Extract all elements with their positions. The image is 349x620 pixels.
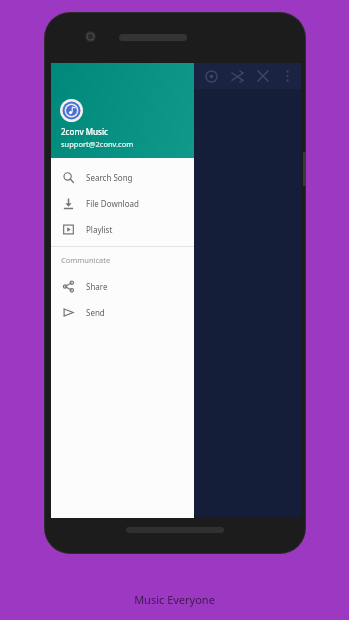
staticText: Share: [86, 281, 108, 292]
staticText: Playlist: [86, 224, 113, 235]
button[interactable]: Search Song: [51, 164, 194, 190]
staticText: File Download: [86, 198, 139, 209]
staticText: Music Everyone: [134, 592, 215, 607]
staticText: Communicate: [61, 255, 111, 265]
staticText: support@2conv.com: [61, 139, 134, 149]
button[interactable]: Playlist: [51, 216, 194, 242]
staticText: Search Song: [86, 172, 133, 183]
staticText: Send: [86, 307, 105, 318]
button[interactable]: Close: [250, 63, 276, 89]
button[interactable]: Share: [51, 273, 194, 299]
button[interactable]: Send: [51, 299, 194, 325]
button[interactable]: More options: [276, 65, 298, 87]
button[interactable]: File Download: [51, 190, 194, 216]
button[interactable]: Record: [198, 63, 224, 89]
button[interactable]: Shuffle: [224, 63, 250, 89]
staticText: 2conv Music: [61, 126, 109, 137]
